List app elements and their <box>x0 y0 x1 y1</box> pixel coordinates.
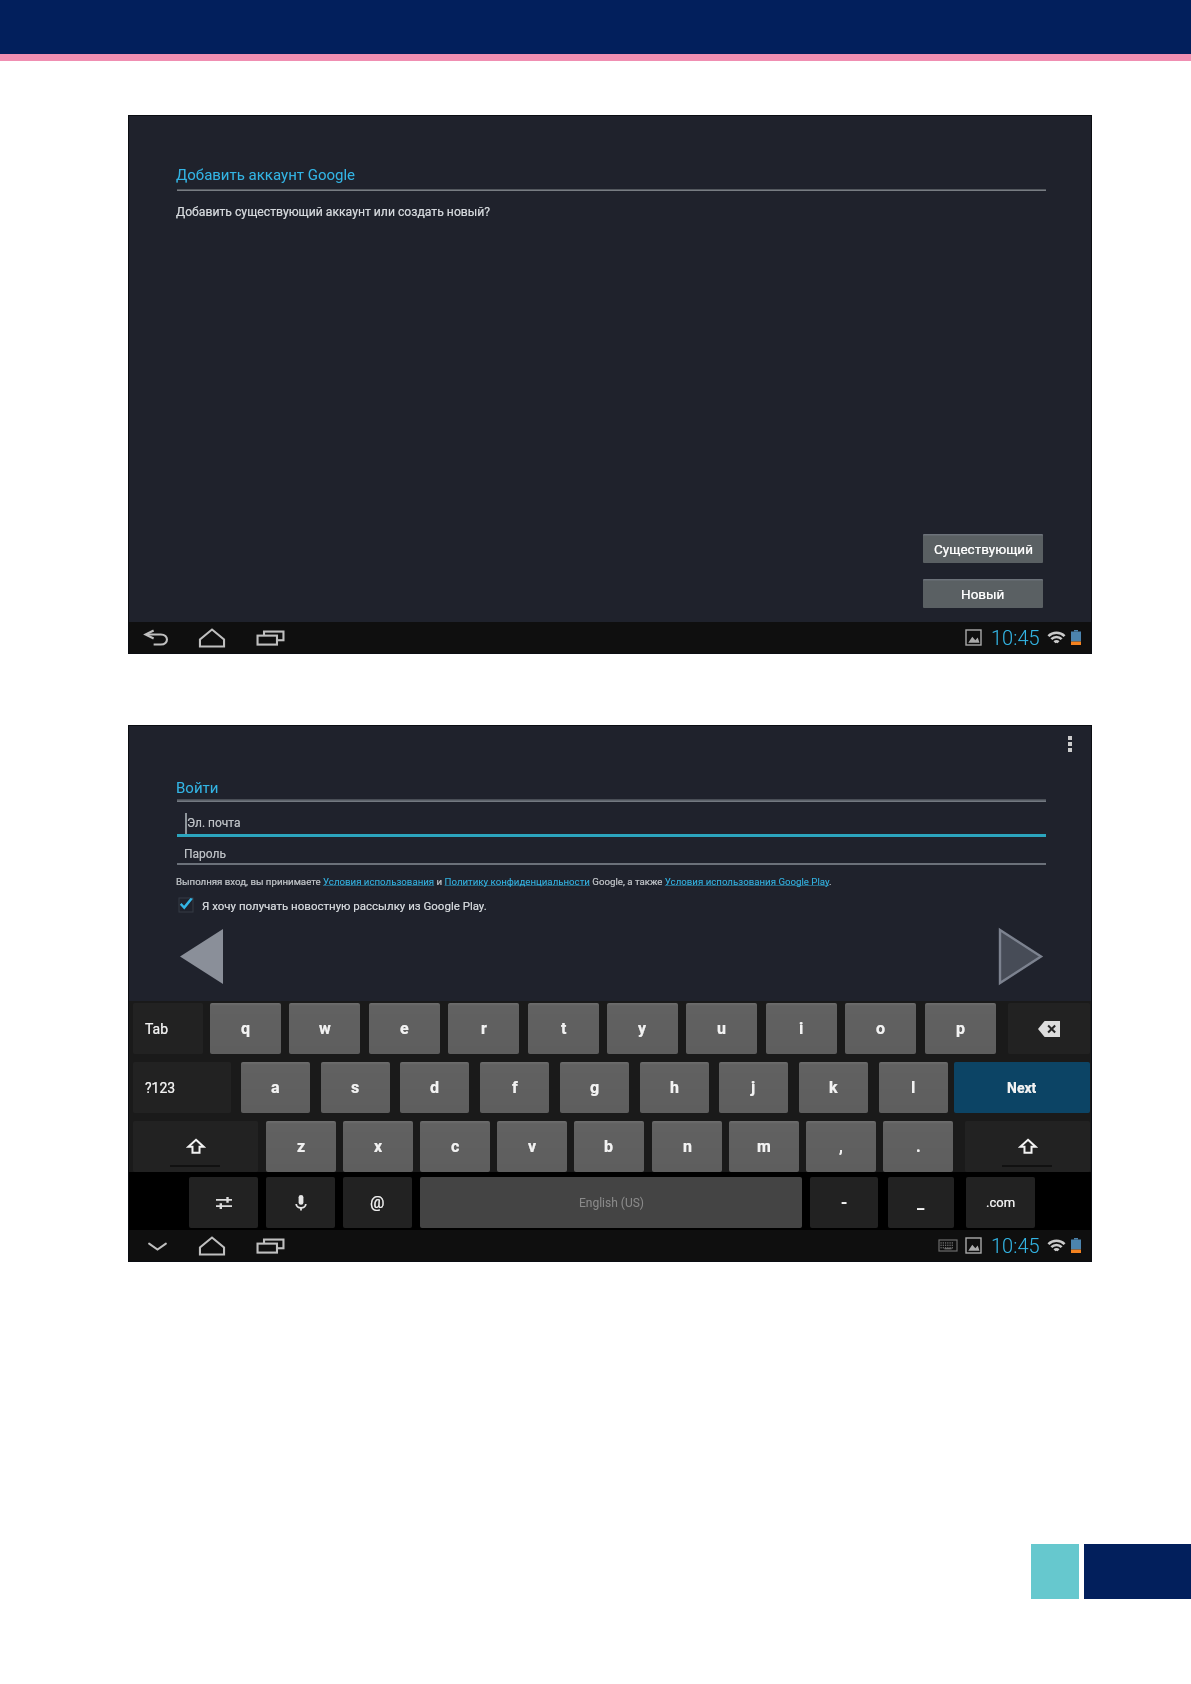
staticText: x <box>374 1137 383 1156</box>
staticText: q <box>241 1019 251 1038</box>
staticText: o <box>876 1019 886 1038</box>
button[interactable]: d <box>400 1062 469 1113</box>
button[interactable]: l <box>879 1062 948 1113</box>
button[interactable]: @ <box>343 1177 412 1228</box>
button[interactable]: Backspace <box>1008 1003 1090 1054</box>
button[interactable]: Я хочу получать новостную рассылку из Go… <box>179 898 487 912</box>
button[interactable]: .com <box>966 1177 1035 1228</box>
staticText: c <box>451 1137 460 1156</box>
button[interactable]: x <box>343 1121 413 1172</box>
button[interactable]: m <box>729 1121 799 1172</box>
button[interactable]: f <box>480 1062 549 1113</box>
staticText: e <box>400 1019 409 1038</box>
button[interactable]: Previous <box>180 929 223 984</box>
staticText: b <box>604 1137 614 1156</box>
staticText: 10:45 <box>991 626 1040 649</box>
button[interactable]: , <box>806 1121 876 1172</box>
staticText: .com <box>986 1195 1016 1210</box>
staticText: i <box>799 1019 804 1038</box>
staticText: Эл. почта <box>187 816 241 830</box>
button[interactable]: w <box>289 1003 360 1054</box>
button[interactable]: p <box>925 1003 996 1054</box>
staticText: _ <box>917 1193 925 1212</box>
staticText: m <box>757 1137 771 1156</box>
button[interactable]: u <box>686 1003 757 1054</box>
button[interactable]: y <box>607 1003 678 1054</box>
staticText: Добавить существующий аккаунт или создат… <box>176 205 491 219</box>
staticText: Я хочу получать новостную рассылку из Go… <box>202 899 487 912</box>
button[interactable]: n <box>652 1121 722 1172</box>
staticText: s <box>351 1078 360 1097</box>
staticText: Пароль <box>184 847 227 861</box>
button[interactable]: b <box>574 1121 644 1172</box>
button[interactable]: Home <box>188 622 236 653</box>
button[interactable]: z <box>266 1121 336 1172</box>
button[interactable]: Существующий <box>923 534 1043 563</box>
staticText: h <box>670 1078 679 1097</box>
staticText: p <box>956 1019 966 1038</box>
button[interactable]: Keyboard settings <box>189 1177 258 1228</box>
staticText: t <box>561 1019 567 1038</box>
button[interactable]: English (US) <box>420 1177 802 1228</box>
button[interactable]: g <box>560 1062 629 1113</box>
button[interactable]: c <box>420 1121 490 1172</box>
button[interactable]: Back <box>133 622 181 653</box>
button[interactable]: Tab <box>133 1003 203 1054</box>
staticText: n <box>683 1137 692 1156</box>
staticText: Добавить аккаунт Google <box>176 166 356 184</box>
staticText: y <box>638 1019 647 1038</box>
button[interactable]: k <box>799 1062 868 1113</box>
button[interactable]: h <box>640 1062 709 1113</box>
button[interactable]: Recents <box>246 1230 294 1261</box>
button[interactable]: i <box>766 1003 837 1054</box>
staticText: w <box>319 1019 331 1038</box>
button[interactable]: Recents <box>246 622 294 653</box>
button[interactable]: j <box>719 1062 788 1113</box>
staticText: z <box>297 1137 306 1156</box>
staticText: a <box>271 1078 280 1097</box>
staticText: ?123 <box>145 1080 176 1096</box>
button[interactable]: s <box>321 1062 390 1113</box>
button[interactable]: Voice input <box>266 1177 335 1228</box>
button[interactable]: Next <box>954 1062 1090 1113</box>
button[interactable]: - <box>810 1177 878 1228</box>
button[interactable]: r <box>448 1003 519 1054</box>
staticText: Tab <box>145 1021 169 1037</box>
staticText: Войти <box>176 779 219 797</box>
staticText: l <box>911 1078 916 1097</box>
staticText: j <box>751 1078 756 1097</box>
button[interactable]: Shift <box>965 1121 1090 1172</box>
staticText: Новый <box>961 586 1005 602</box>
staticText: d <box>430 1078 440 1097</box>
button[interactable]: a <box>241 1062 310 1113</box>
button[interactable]: Next <box>999 929 1042 984</box>
button[interactable]: More options <box>1052 726 1088 762</box>
staticText: @ <box>370 1193 385 1212</box>
staticText: - <box>841 1193 848 1212</box>
staticText: k <box>829 1078 838 1097</box>
button[interactable]: o <box>845 1003 916 1054</box>
button[interactable]: Новый <box>923 579 1043 608</box>
staticText: Существующий <box>934 541 1033 557</box>
button[interactable]: Shift <box>133 1121 258 1172</box>
staticText: g <box>590 1078 600 1097</box>
staticText: 10:45 <box>991 1234 1040 1257</box>
staticText: , <box>839 1137 843 1156</box>
staticText: f <box>512 1078 518 1097</box>
button[interactable]: _ <box>888 1177 954 1228</box>
button[interactable]: . <box>883 1121 953 1172</box>
staticText: u <box>717 1019 726 1038</box>
button[interactable]: t <box>528 1003 599 1054</box>
button[interactable]: e <box>369 1003 440 1054</box>
staticText: Выполняя вход, вы принимаете Условия исп… <box>176 876 832 887</box>
staticText: v <box>528 1137 537 1156</box>
staticText: . <box>916 1137 921 1156</box>
button[interactable]: q <box>210 1003 281 1054</box>
staticText: English (US) <box>579 1196 644 1210</box>
staticText: r <box>481 1019 487 1038</box>
button[interactable]: ?123 <box>133 1062 231 1113</box>
button[interactable]: Home <box>188 1230 236 1261</box>
staticText: Next <box>1007 1080 1037 1096</box>
button[interactable]: Back <box>133 1230 181 1261</box>
button[interactable]: v <box>497 1121 567 1172</box>
